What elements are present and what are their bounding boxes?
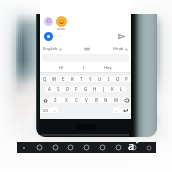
button[interactable]: I (104, 76, 113, 82)
staticText: Q (43, 76, 47, 82)
button[interactable]: Z (50, 97, 61, 103)
staticText: Y (89, 76, 92, 82)
staticText: I (108, 76, 110, 82)
button[interactable]: M (111, 97, 121, 103)
button[interactable]: Return (120, 108, 131, 113)
staticText: P (125, 76, 128, 82)
button[interactable]: H (90, 86, 99, 92)
button[interactable]: J (99, 86, 108, 92)
other: Backspace (124, 98, 129, 103)
button[interactable]: B (91, 97, 101, 103)
button[interactable]: More (146, 145, 152, 151)
staticText: A (48, 86, 51, 92)
button[interactable]: English (43, 46, 62, 52)
button[interactable]: Period (113, 107, 120, 113)
staticText: X (65, 97, 68, 103)
button[interactable]: Shift (40, 98, 50, 103)
staticText: T (80, 76, 83, 82)
staticText: B (95, 97, 98, 103)
button[interactable]: K (108, 86, 117, 92)
staticText: K (111, 86, 114, 92)
button[interactable]: T (77, 76, 86, 82)
button[interactable]: Tool 7 (130, 144, 137, 151)
staticText: . (116, 107, 118, 113)
button[interactable]: E (59, 76, 68, 82)
staticText: Hindi (113, 46, 124, 52)
other: Swap languages (84, 46, 90, 52)
staticText: D (47, 18, 51, 25)
button[interactable]: A (45, 86, 54, 92)
staticText: S (57, 86, 60, 92)
other: Send (118, 33, 125, 40)
button[interactable]: D (63, 86, 72, 92)
staticText: M (114, 97, 118, 103)
button[interactable]: R (68, 76, 77, 82)
button[interactable]: L (117, 86, 126, 92)
staticText: I (83, 65, 85, 71)
button[interactable]: N (101, 97, 111, 103)
button[interactable]: Send (117, 32, 126, 41)
button[interactable]: G (81, 86, 90, 92)
button[interactable]: F (72, 86, 81, 92)
button[interactable]: I (83, 65, 85, 71)
staticText: H (93, 86, 97, 92)
button[interactable]: W (50, 76, 59, 82)
staticText: F (75, 86, 78, 92)
button[interactable]: Play audio (44, 32, 53, 41)
staticText: C (75, 97, 78, 103)
button[interactable]: O (113, 76, 122, 82)
other: Shift (43, 98, 48, 103)
button[interactable]: Backspace (121, 98, 131, 103)
staticText: G (84, 86, 88, 92)
button[interactable]: Profile (44, 17, 53, 26)
staticText: E (62, 76, 65, 82)
button[interactable]: P (122, 76, 131, 82)
staticText: English (43, 46, 58, 52)
staticText: a (128, 138, 135, 153)
button[interactable]: Tool 3 (67, 144, 74, 151)
button[interactable]: Comma (51, 107, 58, 113)
button[interactable]: Tool 4 (83, 144, 90, 151)
staticText: N (104, 97, 108, 103)
button[interactable]: Y (86, 76, 95, 82)
staticText: D (66, 86, 70, 92)
staticText: V (85, 97, 88, 103)
staticText: R (71, 76, 74, 82)
staticText: Hey (104, 65, 112, 71)
staticText: , (54, 107, 56, 113)
staticText: 123 (42, 108, 49, 113)
button[interactable]: Tool 6 (115, 144, 122, 151)
button[interactable]: V (81, 97, 91, 103)
button[interactable]: Hindi (113, 46, 128, 52)
button[interactable]: Tool 1 (36, 144, 43, 151)
button[interactable]: Menu (21, 145, 27, 151)
button[interactable]: Tool 5 (99, 144, 106, 151)
staticText: O (116, 76, 120, 82)
button[interactable]: X (61, 97, 71, 103)
staticText: U (98, 76, 102, 82)
staticText: J (103, 86, 105, 92)
staticText: Hi (59, 65, 64, 71)
staticText: Z (54, 97, 57, 103)
staticText: L (120, 86, 123, 92)
button[interactable]: S (54, 86, 63, 92)
button[interactable]: Tool 2 (52, 144, 59, 151)
button[interactable]: Hi (59, 65, 64, 71)
button[interactable]: Q (40, 76, 50, 82)
staticText: W (52, 76, 57, 82)
button[interactable]: C (71, 97, 81, 103)
button[interactable]: Translate (128, 134, 144, 150)
button[interactable]: 123 (40, 108, 51, 113)
button[interactable]: U (95, 76, 104, 82)
button[interactable]: Hey (104, 65, 112, 71)
